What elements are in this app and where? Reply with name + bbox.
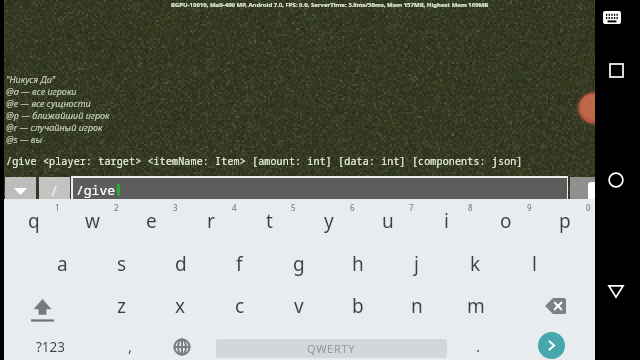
staticText: @p — ближайший игрок [6, 109, 110, 121]
staticText: s [117, 251, 127, 277]
staticText: 1 [55, 202, 60, 213]
staticText: /give [76, 181, 116, 199]
staticText: 2 [114, 202, 119, 213]
staticText: 4 [232, 202, 237, 213]
staticText: l [532, 251, 537, 277]
staticText: j [414, 251, 419, 277]
button[interactable]: f [210, 242, 269, 285]
button[interactable]: Recent apps [603, 57, 629, 83]
staticText: n [411, 293, 423, 319]
staticText: z [117, 293, 126, 319]
button[interactable]: Hide keyboard [599, 4, 625, 30]
button[interactable]: v [269, 285, 328, 327]
staticText: d [175, 251, 187, 277]
staticText: ?123 [36, 338, 66, 356]
staticText: i [444, 208, 449, 234]
staticText: /give <player: target> <itemName: Item> … [6, 154, 523, 168]
button[interactable]: y [299, 199, 358, 242]
button[interactable]: p [535, 199, 594, 242]
staticText: Device: Redmi 4A, Xiaomi, 1280x720 [383, 0, 489, 1]
staticText: o [500, 208, 512, 234]
staticText: q [28, 208, 40, 234]
staticText: 3 [173, 202, 178, 213]
staticText: . [476, 336, 481, 356]
button[interactable]: , [100, 326, 160, 360]
button[interactable]: u [358, 199, 417, 242]
staticText: , [128, 336, 133, 356]
button[interactable]: j [387, 242, 446, 285]
button[interactable]: ?123 [6, 326, 96, 360]
button[interactable]: w [63, 199, 122, 242]
staticText: u [382, 208, 394, 234]
button[interactable]: g [269, 242, 328, 285]
button[interactable]: Send command [570, 177, 596, 199]
staticText: g [293, 251, 305, 277]
button[interactable]: t [240, 199, 299, 242]
staticText: 6 [350, 202, 355, 213]
staticText: 7 [409, 202, 414, 213]
button[interactable]: Back [603, 278, 629, 304]
button[interactable]: k [446, 242, 505, 285]
button[interactable]: b [328, 285, 387, 327]
staticText: v [294, 293, 304, 319]
button[interactable]: Enter [538, 332, 565, 359]
staticText: m [467, 293, 485, 319]
button[interactable]: r [181, 199, 240, 242]
button[interactable]: . [455, 326, 501, 360]
button[interactable]: z [92, 285, 151, 327]
button[interactable]: q [4, 199, 63, 242]
button[interactable]: QWERTY [216, 339, 447, 358]
staticText: h [352, 251, 364, 277]
staticText: t [266, 208, 273, 234]
staticText: r [207, 208, 215, 234]
button[interactable]: Home [603, 167, 629, 193]
button[interactable]: x [151, 285, 210, 327]
staticText: w [85, 208, 100, 234]
button[interactable]: h [328, 242, 387, 285]
button[interactable]: d [151, 242, 210, 285]
staticText: 0 [586, 202, 591, 213]
staticText: a [57, 251, 68, 277]
staticText: f [236, 251, 243, 277]
staticText: e [146, 208, 157, 234]
staticText: p [559, 208, 571, 234]
staticText: 5 [291, 202, 296, 213]
button[interactable]: m [446, 285, 505, 327]
staticText: @s — вы [6, 133, 43, 145]
button[interactable]: /give [73, 178, 567, 199]
staticText: BGPU-10010, Mali-400 MP, Android 7.0, FP… [171, 1, 489, 9]
staticText: 9 [527, 202, 532, 213]
button[interactable]: Change language [160, 326, 204, 360]
button[interactable]: i [417, 199, 476, 242]
button[interactable]: s [92, 242, 151, 285]
staticText: 8 [468, 202, 473, 213]
staticText: @e — все сущности [6, 97, 91, 109]
button[interactable]: e [122, 199, 181, 242]
button[interactable]: c [210, 285, 269, 327]
staticText: @a — все игроки [6, 85, 77, 97]
button[interactable]: Backspace [520, 285, 590, 327]
button[interactable]: / [39, 177, 70, 199]
staticText: / [50, 181, 59, 200]
button[interactable]: n [387, 285, 446, 327]
button[interactable]: l [505, 242, 564, 285]
staticText: "Никуся Ди" [6, 73, 56, 85]
staticText: x [175, 293, 186, 319]
staticText: y [324, 208, 334, 234]
staticText: b [352, 293, 364, 319]
staticText: c [235, 293, 245, 319]
staticText: QWERTY [307, 341, 356, 356]
button[interactable]: Shift [12, 285, 72, 327]
button[interactable]: o [476, 199, 535, 242]
button[interactable]: Show history [5, 177, 36, 199]
staticText: k [470, 251, 481, 277]
staticText: @r — случайный игрок [6, 121, 103, 133]
button[interactable]: a [33, 242, 92, 285]
